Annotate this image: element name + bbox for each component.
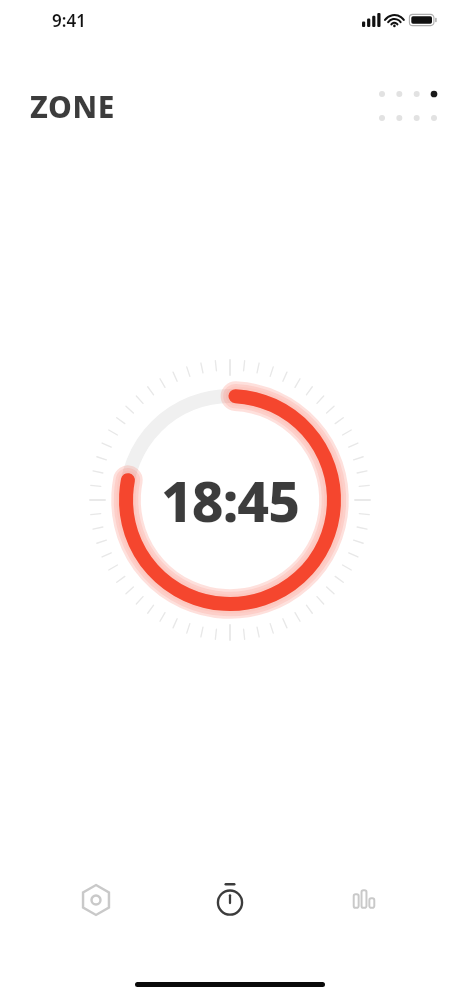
button[interactable]: Settings (58, 872, 134, 928)
staticText: ZONE (30, 86, 116, 127)
staticText: 18:45 (161, 463, 299, 538)
staticText: 9:41 (52, 9, 86, 32)
button[interactable]: Menu (378, 87, 438, 125)
button[interactable]: Statistics (326, 872, 402, 928)
button[interactable]: Timer (192, 872, 268, 928)
